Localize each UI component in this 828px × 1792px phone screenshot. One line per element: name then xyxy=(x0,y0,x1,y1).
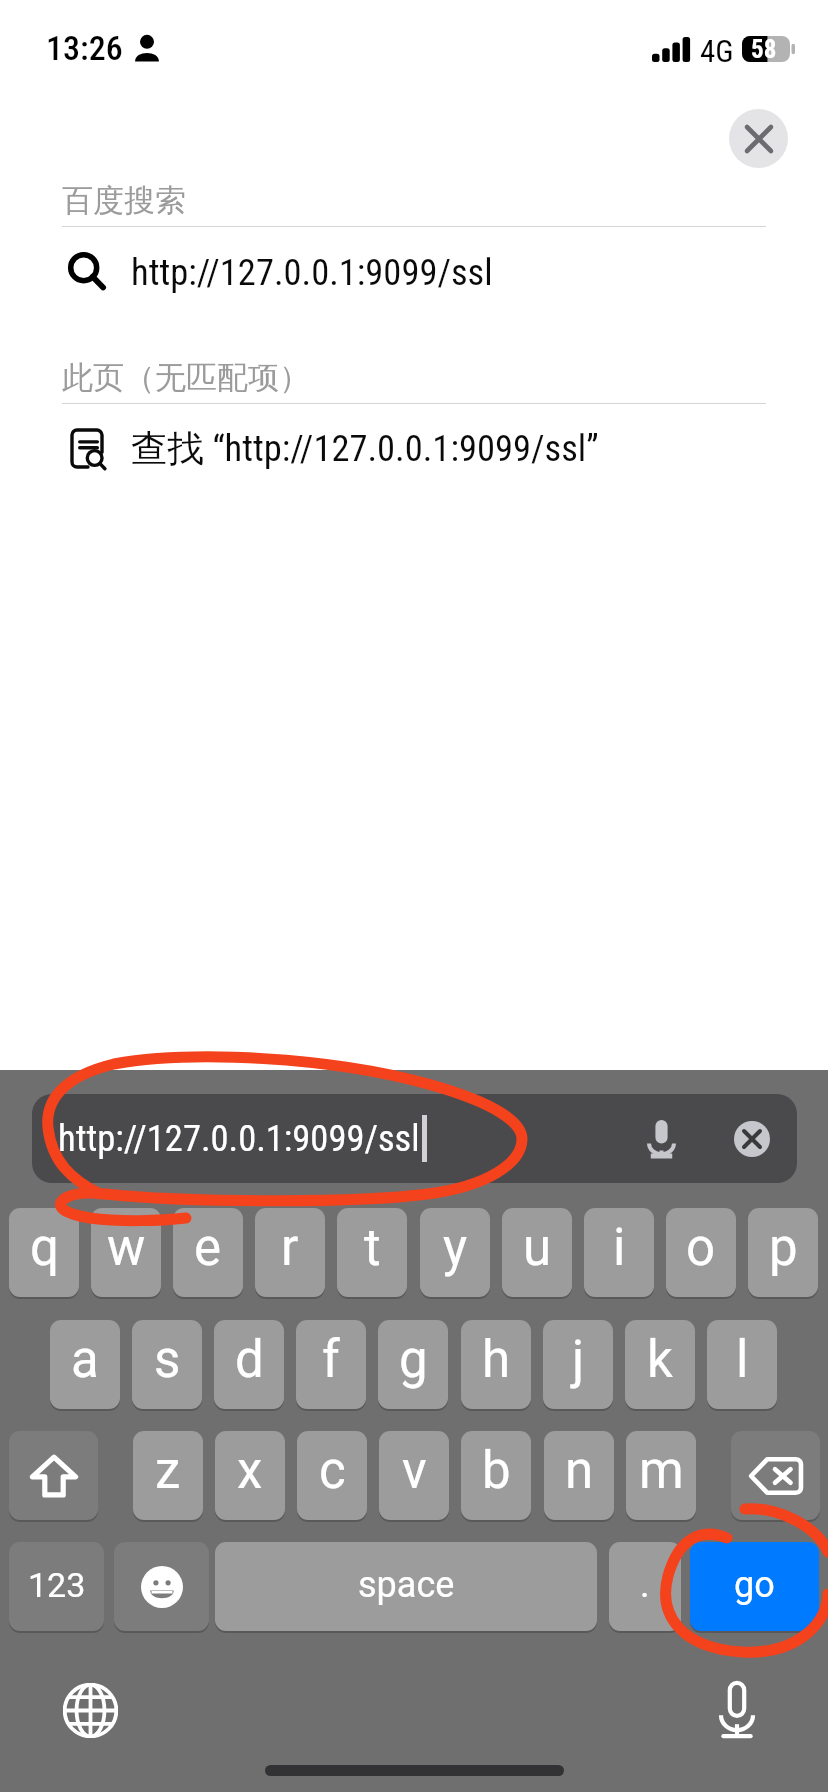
staticText: space xyxy=(358,1564,455,1606)
button[interactable]: 查找 “http://127.0.0.1:9099/ssl” xyxy=(0,402,828,496)
button[interactable]: k xyxy=(625,1320,695,1409)
staticText: http://127.0.0.1:9099/ssl xyxy=(131,251,493,294)
button[interactable]: Change keyboard xyxy=(63,1683,118,1738)
staticText: j xyxy=(572,1330,585,1390)
staticText: f xyxy=(322,1330,340,1390)
button[interactable]: t xyxy=(337,1208,407,1297)
staticText: a xyxy=(71,1330,99,1390)
staticText: 此页（无匹配项） xyxy=(62,358,310,397)
staticText: d xyxy=(235,1330,264,1390)
staticText: v xyxy=(402,1441,427,1501)
staticText: 123 xyxy=(28,1565,86,1605)
button[interactable]: g xyxy=(378,1320,448,1409)
button[interactable]: x xyxy=(215,1431,285,1520)
staticText: o xyxy=(686,1218,716,1278)
staticText: go xyxy=(734,1564,775,1606)
button[interactable]: d xyxy=(214,1320,284,1409)
staticText: z xyxy=(155,1441,181,1501)
button[interactable]: go xyxy=(690,1542,819,1631)
button[interactable]: f xyxy=(296,1320,366,1409)
staticText: 查找 “http://127.0.0.1:9099/ssl” xyxy=(131,426,599,472)
button[interactable]: o xyxy=(666,1208,736,1297)
button[interactable]: y xyxy=(420,1208,490,1297)
button[interactable]: j xyxy=(543,1320,613,1409)
staticText: w xyxy=(107,1218,146,1278)
button[interactable]: http://127.0.0.1:9099/ssl xyxy=(0,225,828,319)
button[interactable]: Close xyxy=(729,109,788,168)
staticText: p xyxy=(769,1218,798,1278)
staticText: q xyxy=(30,1218,59,1278)
staticText: r xyxy=(281,1218,299,1278)
button[interactable]: a xyxy=(50,1320,120,1409)
button[interactable]: n xyxy=(544,1431,614,1520)
button[interactable]: Clear text xyxy=(734,1121,770,1157)
button[interactable]: Emoji keyboard xyxy=(114,1542,209,1631)
button[interactable]: q xyxy=(9,1208,79,1297)
button[interactable]: 123 xyxy=(9,1542,104,1631)
staticText: x xyxy=(237,1441,263,1501)
button[interactable]: Shift xyxy=(9,1431,98,1520)
button[interactable]: http://127.0.0.1:9099/ssl xyxy=(32,1094,797,1183)
staticText: c xyxy=(319,1441,346,1501)
button[interactable]: p xyxy=(748,1208,818,1297)
button[interactable]: . xyxy=(609,1542,681,1631)
staticText: k xyxy=(647,1330,673,1390)
staticText: y xyxy=(443,1218,468,1278)
button[interactable]: s xyxy=(132,1320,202,1409)
staticText: i xyxy=(613,1218,626,1278)
staticText: 百度搜索 xyxy=(62,181,186,220)
staticText: e xyxy=(194,1218,222,1278)
button[interactable]: Voice input xyxy=(637,1115,685,1163)
staticText: g xyxy=(399,1330,428,1390)
button[interactable]: Dictation xyxy=(717,1681,757,1741)
staticText: l xyxy=(736,1330,749,1390)
button[interactable]: l xyxy=(707,1320,777,1409)
button[interactable]: space xyxy=(215,1542,597,1631)
staticText: b xyxy=(482,1441,511,1501)
staticText: t xyxy=(364,1218,381,1278)
staticText: n xyxy=(565,1441,594,1501)
button[interactable]: m xyxy=(626,1431,696,1520)
button[interactable]: u xyxy=(502,1208,572,1297)
staticText: . xyxy=(640,1564,650,1606)
staticText: s xyxy=(154,1330,181,1390)
button[interactable]: b xyxy=(461,1431,531,1520)
button[interactable]: e xyxy=(173,1208,243,1297)
button[interactable]: v xyxy=(379,1431,449,1520)
staticText: h xyxy=(482,1330,511,1390)
staticText: 13:26 xyxy=(46,28,123,68)
staticText: 4G xyxy=(700,33,734,69)
button[interactable]: z xyxy=(133,1431,203,1520)
button[interactable]: i xyxy=(584,1208,654,1297)
staticText: 58 xyxy=(751,35,777,61)
button[interactable]: Backspace xyxy=(731,1431,820,1520)
staticText: u xyxy=(523,1218,552,1278)
button[interactable]: h xyxy=(461,1320,531,1409)
button[interactable]: c xyxy=(297,1431,367,1520)
button[interactable]: w xyxy=(91,1208,161,1297)
button[interactable]: r xyxy=(255,1208,325,1297)
staticText: http://127.0.0.1:9099/ssl xyxy=(58,1117,420,1160)
staticText: m xyxy=(639,1441,684,1501)
